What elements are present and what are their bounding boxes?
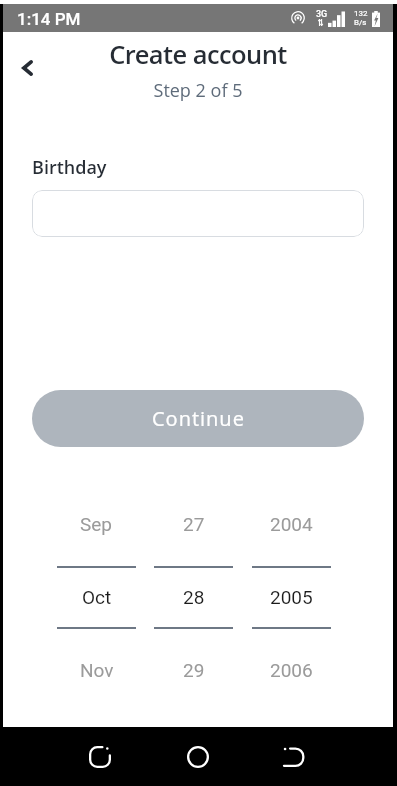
staticText: 132 <box>354 9 368 18</box>
staticText: 28 <box>183 586 205 608</box>
button[interactable]: 28 <box>154 571 233 623</box>
staticText: B/s <box>354 18 367 27</box>
button[interactable]: 2006 <box>252 644 331 696</box>
button[interactable]: Continue <box>32 390 364 447</box>
button[interactable]: Nov <box>57 644 136 696</box>
staticText: Create account <box>3 37 393 72</box>
staticText: 2006 <box>270 659 313 681</box>
staticText: Sep <box>80 513 113 535</box>
button[interactable]: 2005 <box>252 571 331 623</box>
button[interactable]: Back <box>271 732 321 782</box>
staticText: 29 <box>183 659 205 681</box>
staticText: Nov <box>80 659 114 681</box>
staticText: Oct <box>82 586 112 608</box>
button[interactable] <box>32 190 364 237</box>
button[interactable]: Sep <box>57 498 136 550</box>
staticText: 3G <box>316 9 328 20</box>
staticText: Step 2 of 5 <box>3 78 393 103</box>
staticText: 2004 <box>270 513 313 535</box>
button[interactable]: 2004 <box>252 498 331 550</box>
button[interactable]: 27 <box>154 498 233 550</box>
button[interactable]: Oct <box>57 571 136 623</box>
staticText: 2005 <box>270 586 313 608</box>
staticText: Continue <box>152 405 245 432</box>
button[interactable]: Back <box>7 48 47 88</box>
staticText: 27 <box>183 513 205 535</box>
button[interactable]: 29 <box>154 644 233 696</box>
button[interactable]: Recent apps <box>75 732 125 782</box>
staticText: 1:14 PM <box>17 9 81 29</box>
button[interactable]: Home <box>173 732 223 782</box>
staticText: Birthday <box>32 155 107 180</box>
